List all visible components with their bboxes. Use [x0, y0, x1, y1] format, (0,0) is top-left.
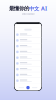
- staticText: 中文 AI: [29, 5, 47, 12]
- staticText: 最懂你的: [9, 5, 29, 12]
- staticText: 深度理解中文语境的智能助手: [21, 13, 34, 15]
